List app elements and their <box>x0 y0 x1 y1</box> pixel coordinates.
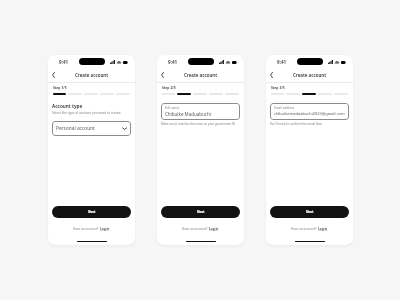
staticText: Full name <box>165 106 180 110</box>
staticText: Chibuike Maduabuchi <box>165 111 211 117</box>
staticText: Step 2/5 <box>162 85 176 90</box>
staticText: Create account <box>75 72 109 78</box>
button[interactable]: Email address <box>270 103 349 120</box>
staticText: Have an account? <box>73 227 100 231</box>
button[interactable]: Back <box>48 70 58 80</box>
staticText: Log in <box>209 227 219 231</box>
staticText: Create account <box>184 72 218 78</box>
staticText: 9:41 <box>168 59 178 65</box>
staticText: Step 3/5 <box>271 85 285 90</box>
button[interactable]: Log in <box>209 227 219 231</box>
staticText: Step 1/5 <box>53 85 67 90</box>
staticText: Have an account? <box>291 227 318 231</box>
staticText: 9:41 <box>277 59 287 65</box>
staticText: Log in <box>318 227 328 231</box>
button[interactable]: Personal account <box>52 121 131 136</box>
button[interactable]: Next <box>270 206 349 218</box>
button[interactable]: Back <box>157 70 167 80</box>
staticText: chibuikemaduabuchi2023@gmail.com <box>274 111 345 116</box>
button[interactable]: Next <box>161 206 240 218</box>
staticText: Account type <box>52 103 83 109</box>
staticText: Next <box>197 210 205 214</box>
staticText: Next <box>306 210 314 214</box>
button[interactable]: Full name <box>161 103 240 120</box>
button[interactable]: Log in <box>318 227 328 231</box>
staticText: Select the type of account you want to c… <box>52 111 121 115</box>
staticText: 9:41 <box>59 59 69 65</box>
button[interactable]: Back <box>266 70 276 80</box>
staticText: Personal account <box>56 125 122 132</box>
button[interactable]: Next <box>52 206 131 218</box>
staticText: Email address <box>274 106 295 110</box>
staticText: Make sure it matches the name on your go… <box>161 122 235 126</box>
staticText: Create account <box>293 72 327 78</box>
staticText: Log in <box>100 227 110 231</box>
staticText: You'll need to confirm this email later <box>270 122 323 126</box>
button[interactable]: Log in <box>100 227 110 231</box>
staticText: Next <box>88 210 96 214</box>
staticText: Have an account? <box>182 227 209 231</box>
